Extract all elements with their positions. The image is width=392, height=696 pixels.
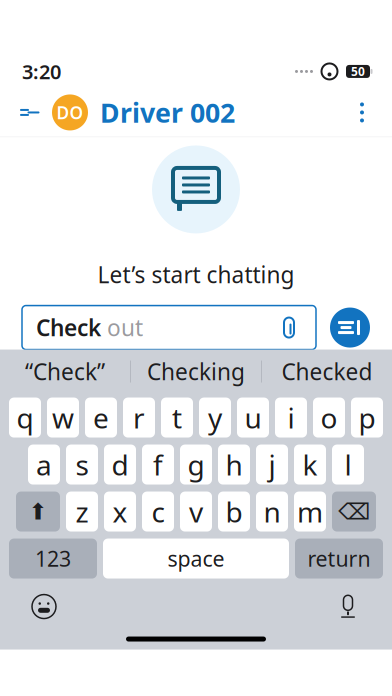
staticText: ⌫	[338, 499, 370, 524]
staticText: z	[75, 493, 88, 530]
staticText: return	[307, 544, 370, 573]
staticText: Checking	[147, 356, 245, 387]
button[interactable]: l	[332, 445, 364, 485]
button[interactable]: r	[123, 398, 155, 438]
button[interactable]: DO	[52, 94, 235, 130]
button[interactable]: e	[85, 398, 117, 438]
button[interactable]: v	[180, 492, 212, 532]
button[interactable]: u	[237, 398, 269, 438]
staticText: m	[297, 493, 323, 530]
staticText: u	[244, 399, 261, 436]
staticText: h	[225, 446, 242, 483]
button[interactable]: k	[294, 445, 326, 485]
button[interactable]: Checked	[262, 350, 392, 394]
staticText: 3:20	[22, 58, 61, 85]
staticText: p	[358, 399, 375, 436]
staticText: 50	[351, 63, 365, 79]
button[interactable]: y	[199, 398, 231, 438]
button[interactable]: d	[104, 445, 136, 485]
button[interactable]: return	[295, 539, 383, 579]
button[interactable]: t	[161, 398, 193, 438]
button[interactable]: p	[351, 398, 383, 438]
staticText: d	[111, 446, 128, 483]
staticText: v	[189, 493, 203, 530]
button[interactable]: b	[218, 492, 250, 532]
staticText: space	[167, 544, 224, 573]
staticText: Check	[36, 312, 101, 343]
staticText: out	[107, 312, 143, 343]
staticText: Checked	[281, 356, 372, 387]
button[interactable]: x	[104, 492, 136, 532]
staticText: x	[112, 493, 127, 530]
button[interactable]: o	[313, 398, 345, 438]
button[interactable]: “Check”	[0, 350, 130, 394]
staticText: g	[187, 446, 204, 483]
button[interactable]: s	[66, 445, 98, 485]
staticText: r	[133, 399, 145, 436]
button[interactable]: Send	[330, 308, 370, 348]
button[interactable]: space	[103, 539, 289, 579]
staticText: j	[268, 446, 275, 483]
staticText: ⬆	[28, 499, 47, 524]
button[interactable]: j	[256, 445, 288, 485]
button[interactable]: Dictation	[326, 585, 370, 629]
staticText: Let’s start chatting	[97, 259, 294, 289]
button[interactable]: h	[218, 445, 250, 485]
button[interactable]: g	[180, 445, 212, 485]
button[interactable]: w	[47, 398, 79, 438]
staticText: “Check”	[25, 356, 105, 387]
button[interactable]: Attach file	[276, 315, 302, 341]
staticText: l	[344, 446, 351, 483]
button[interactable]: More options	[340, 90, 384, 134]
button[interactable]: i	[275, 398, 307, 438]
staticText: n	[263, 493, 280, 530]
staticText: 123	[35, 544, 71, 573]
button[interactable]: Back	[8, 90, 52, 134]
staticText: Driver 002	[100, 95, 235, 130]
staticText: c	[151, 493, 164, 530]
staticText: y	[208, 399, 222, 436]
button[interactable]: q	[9, 398, 41, 438]
staticText: DO	[56, 101, 83, 124]
staticText: k	[302, 446, 317, 483]
button[interactable]: Emoji	[22, 585, 66, 629]
button[interactable]: c	[142, 492, 174, 532]
button[interactable]: f	[142, 445, 174, 485]
button[interactable]: a	[28, 445, 60, 485]
button[interactable]: Shift	[16, 492, 60, 532]
button[interactable]: n	[256, 492, 288, 532]
staticText: i	[287, 399, 294, 436]
staticText: e	[93, 399, 109, 436]
staticText: w	[52, 399, 74, 436]
button[interactable]: Checking	[131, 350, 261, 394]
staticText: f	[153, 446, 163, 483]
staticText: a	[36, 446, 52, 483]
staticText: s	[75, 446, 88, 483]
button[interactable]: z	[66, 492, 98, 532]
button[interactable]: m	[294, 492, 326, 532]
staticText: b	[225, 493, 242, 530]
staticText: q	[16, 399, 33, 436]
button[interactable]: Delete	[332, 492, 376, 532]
staticText: o	[320, 399, 337, 436]
button[interactable]: 123	[9, 539, 97, 579]
staticText: t	[172, 399, 182, 436]
